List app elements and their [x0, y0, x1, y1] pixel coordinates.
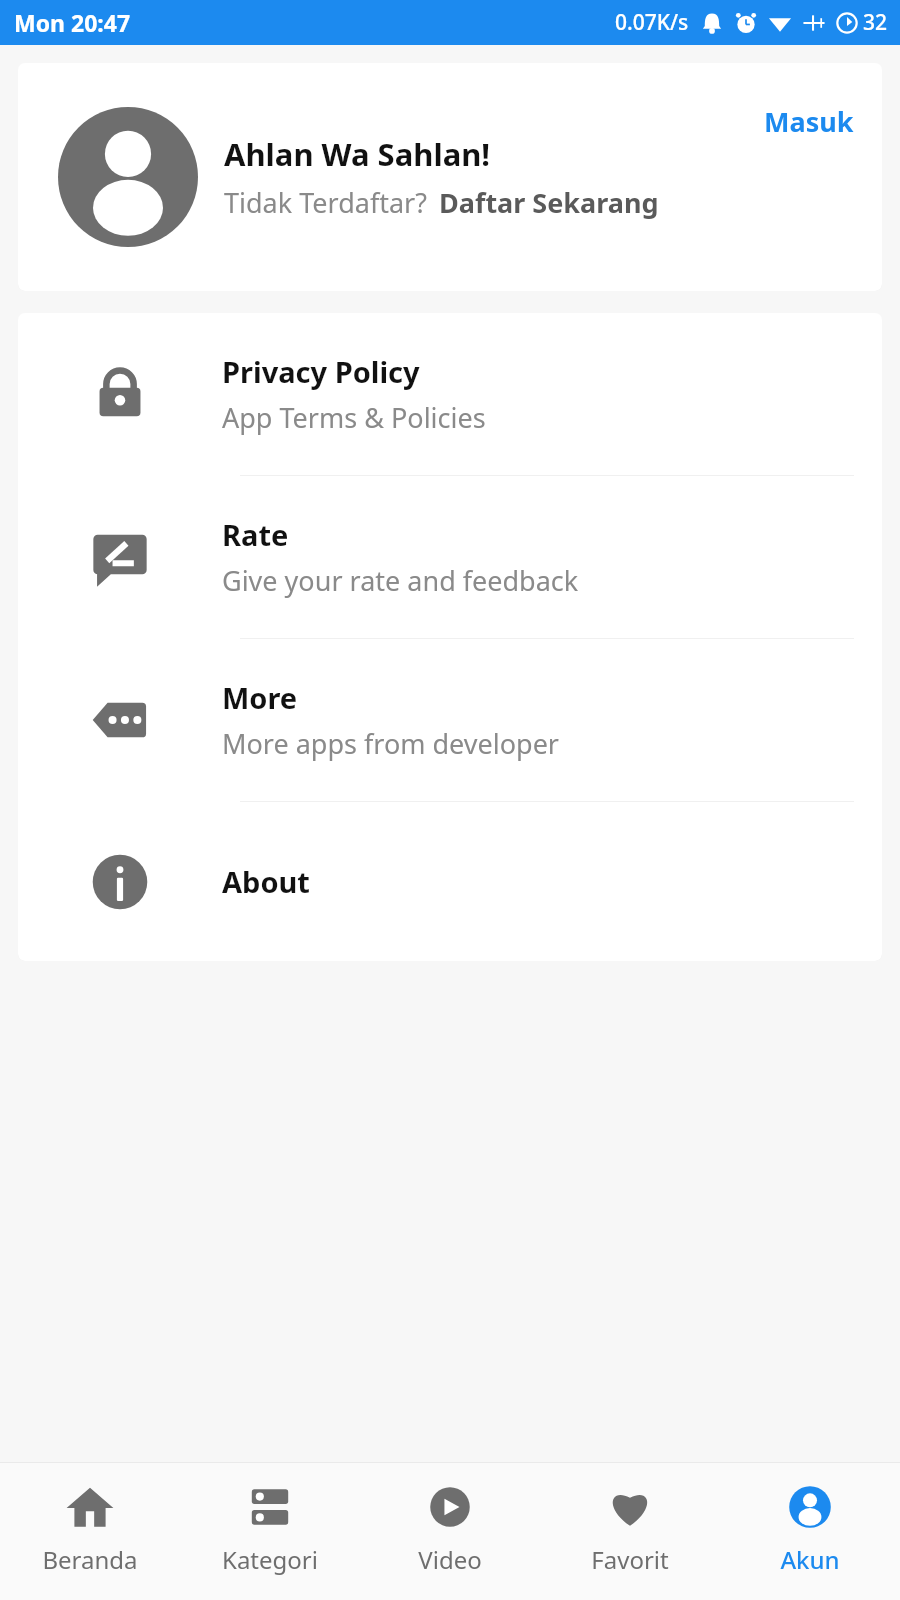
staticText: More — [222, 678, 298, 717]
button[interactable]: Rate — [18, 476, 882, 638]
button[interactable]: Privacy Policy — [18, 313, 882, 475]
button[interactable]: Akun — [720, 1463, 900, 1600]
staticText: Favorit — [591, 1543, 669, 1576]
button[interactable]: Favorit — [540, 1463, 720, 1600]
staticText: Ahlan Wa Sahlan! — [224, 133, 491, 175]
staticText: Akun — [780, 1543, 840, 1576]
staticText: Privacy Policy — [222, 352, 420, 391]
staticText: More apps from developer — [222, 725, 560, 762]
button[interactable]: Daftar Sekarang — [439, 184, 659, 221]
button[interactable]: Video — [360, 1463, 540, 1600]
staticText: Video — [418, 1543, 482, 1576]
button[interactable]: Masuk — [764, 63, 882, 140]
staticText: 32 — [863, 8, 888, 37]
staticText: Tidak Terdaftar? — [224, 184, 427, 221]
button[interactable]: Kategori — [180, 1463, 360, 1600]
staticText: Mon 20:47 — [14, 7, 131, 38]
button[interactable]: Beranda — [0, 1463, 180, 1600]
staticText: Kategori — [222, 1543, 318, 1576]
staticText: 0.07K/s — [615, 8, 689, 37]
staticText: Rate — [222, 515, 289, 554]
staticText: Beranda — [42, 1543, 138, 1576]
staticText: Give your rate and feedback — [222, 562, 579, 599]
button[interactable]: About — [18, 802, 882, 961]
staticText: About — [222, 862, 310, 901]
button[interactable]: More — [18, 639, 882, 801]
staticText: App Terms & Policies — [222, 399, 486, 436]
